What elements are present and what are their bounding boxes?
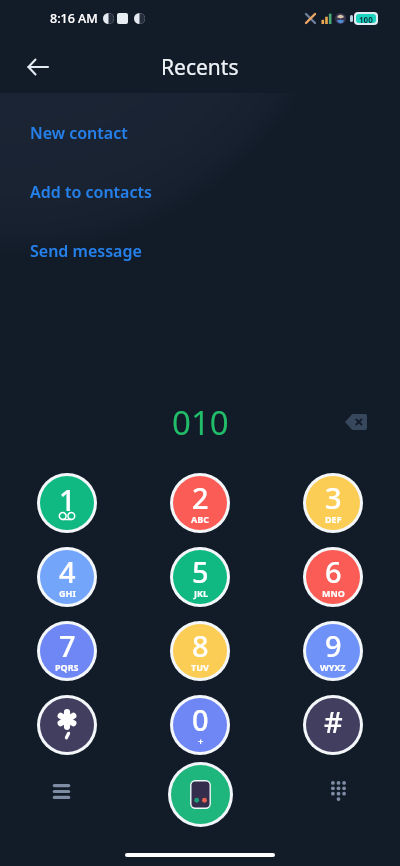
staticText: 2 [192,478,209,517]
button[interactable]: 6 [306,550,360,604]
button[interactable]: Call [171,765,230,824]
staticText: Send message [30,240,142,262]
button[interactable]: Dialpad [316,769,360,813]
button[interactable]: 3 [306,476,360,530]
button[interactable]: 0 [173,698,227,752]
button[interactable]: 8 [173,624,227,678]
button[interactable]: Send message [0,236,400,266]
button[interactable] [40,698,94,752]
staticText: ABC [191,513,209,525]
staticText: DEF [325,513,342,525]
button[interactable]: Add to contacts [0,177,400,207]
button[interactable]: 2 [173,476,227,530]
staticText: 1 [59,480,76,519]
staticText: PQRS [55,661,79,673]
staticText: 0 [192,700,209,739]
staticText: 7 [59,626,76,665]
staticText: 010 [172,400,229,445]
staticText: WYXZ [320,661,346,673]
button[interactable]: 9 [306,624,360,678]
staticText: 5 [192,552,209,591]
staticText: Recents [161,53,239,82]
staticText: JKL [194,587,208,599]
staticText: + [198,735,204,747]
staticText: GHI [59,587,76,599]
staticText: 100 [359,14,373,23]
button[interactable]: New contact [0,118,400,148]
button[interactable]: Back [16,45,60,89]
staticText: New contact [30,122,128,144]
staticText: 8 [192,626,209,665]
button[interactable]: 1 [40,476,94,530]
staticText: # [324,702,343,741]
staticText: 8:16 AM [50,10,98,27]
staticText: TUV [191,661,209,673]
button[interactable]: 5 [173,550,227,604]
button[interactable]: Call log [39,769,83,813]
staticText: Add to contacts [30,181,152,203]
staticText: 4 [59,552,76,591]
staticText: 3 [325,478,342,517]
button[interactable]: 7 [40,624,94,678]
button[interactable]: # [306,698,360,752]
staticText: 6 [325,552,342,591]
staticText: 9 [325,626,342,665]
staticText: MNO [322,587,345,599]
button[interactable]: 4 [40,550,94,604]
button[interactable]: Backspace [337,403,375,441]
